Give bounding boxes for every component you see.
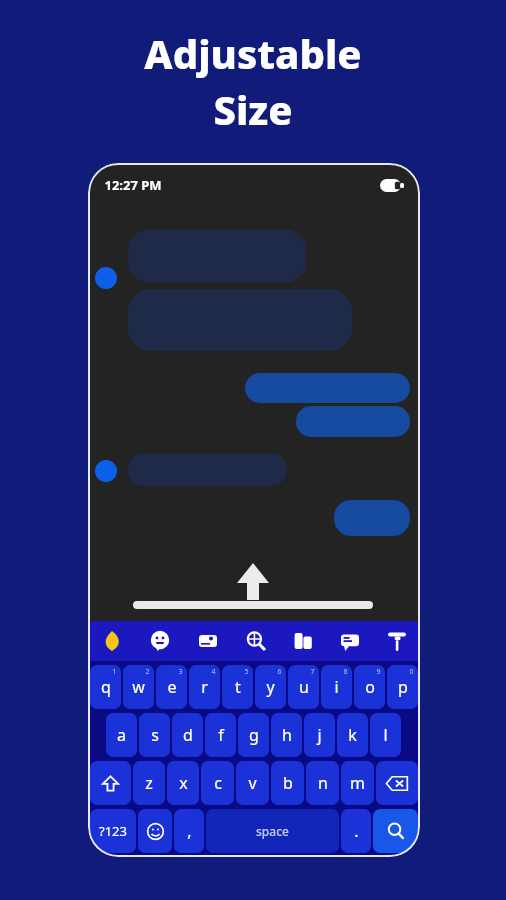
staticText: a xyxy=(117,724,126,746)
button[interactable] xyxy=(128,289,352,351)
staticText: x xyxy=(179,772,188,794)
staticText: w xyxy=(132,676,145,698)
button[interactable]: z xyxy=(133,761,165,805)
button[interactable]: f xyxy=(205,713,236,757)
staticText: e xyxy=(167,676,177,698)
button[interactable] xyxy=(128,453,287,486)
staticText: 5 xyxy=(244,667,249,677)
button[interactable]: GIF xyxy=(184,621,232,661)
staticText: 8 xyxy=(343,667,348,677)
button[interactable]: Search xyxy=(232,621,279,661)
staticText: q xyxy=(101,676,111,698)
staticText: c xyxy=(214,772,222,794)
staticText: f xyxy=(218,724,224,746)
button[interactable]: v xyxy=(236,761,269,805)
button[interactable]: m xyxy=(341,761,374,805)
staticText: , xyxy=(187,820,192,842)
staticText: 7 xyxy=(310,667,315,677)
staticText: 3 xyxy=(178,667,183,677)
staticText: y xyxy=(266,676,275,698)
staticText: 12:27 PM xyxy=(104,176,162,194)
button[interactable]: ?123 xyxy=(90,809,136,853)
button[interactable]: Emoji xyxy=(138,809,172,853)
button[interactable]: Search xyxy=(373,809,418,853)
button[interactable]: Customize xyxy=(373,621,420,661)
button[interactable]: Stickers xyxy=(136,621,184,661)
staticText: . xyxy=(354,820,359,842)
button[interactable]: Backspace xyxy=(376,761,418,805)
staticText: h xyxy=(282,724,292,746)
button[interactable]: o xyxy=(354,665,385,709)
staticText: r xyxy=(201,676,208,698)
button[interactable]: t xyxy=(222,665,253,709)
button[interactable]: p xyxy=(387,665,418,709)
staticText: n xyxy=(318,772,328,794)
button[interactable]: Resize keyboard xyxy=(133,559,373,611)
staticText: u xyxy=(299,676,309,698)
button[interactable]: x xyxy=(167,761,199,805)
staticText: o xyxy=(365,676,375,698)
button[interactable]: j xyxy=(304,713,335,757)
button[interactable] xyxy=(128,229,306,283)
button[interactable]: b xyxy=(271,761,304,805)
staticText: g xyxy=(249,724,259,746)
button[interactable]: a xyxy=(106,713,137,757)
staticText: b xyxy=(283,772,293,794)
button[interactable]: , xyxy=(174,809,204,853)
button[interactable]: q xyxy=(90,665,121,709)
button[interactable]: Contact avatar xyxy=(95,267,117,289)
staticText: m xyxy=(350,772,365,794)
button[interactable] xyxy=(296,406,410,437)
staticText: 4 xyxy=(211,667,216,677)
staticText: 6 xyxy=(277,667,282,677)
staticText: d xyxy=(183,724,193,746)
button[interactable]: e xyxy=(156,665,187,709)
button[interactable] xyxy=(245,373,410,403)
button[interactable]: space xyxy=(206,809,339,853)
button[interactable]: . xyxy=(341,809,371,853)
button[interactable]: Contact avatar xyxy=(95,460,117,482)
staticText: 2 xyxy=(145,667,150,677)
button[interactable]: y xyxy=(255,665,286,709)
staticText: Adjustable xyxy=(144,26,362,80)
staticText: k xyxy=(348,724,357,746)
button[interactable]: w xyxy=(123,665,154,709)
button[interactable]: c xyxy=(201,761,234,805)
button[interactable]: Themes xyxy=(88,621,136,661)
button[interactable]: l xyxy=(370,713,401,757)
staticText: l xyxy=(383,724,388,746)
button[interactable]: u xyxy=(288,665,319,709)
button[interactable]: i xyxy=(321,665,352,709)
staticText: v xyxy=(248,772,257,794)
staticText: 0 xyxy=(409,667,414,677)
button[interactable]: Translate xyxy=(326,621,373,661)
button[interactable]: Shift xyxy=(90,761,131,805)
staticText: Size xyxy=(213,82,293,136)
staticText: j xyxy=(317,724,322,746)
button[interactable]: h xyxy=(271,713,302,757)
staticText: t xyxy=(235,676,241,698)
button[interactable]: s xyxy=(139,713,170,757)
staticText: space xyxy=(256,823,289,839)
staticText: 1 xyxy=(112,667,117,677)
staticText: p xyxy=(398,676,408,698)
staticText: ?123 xyxy=(99,822,127,840)
button[interactable]: d xyxy=(172,713,203,757)
staticText: i xyxy=(334,676,339,698)
staticText: z xyxy=(145,772,153,794)
button[interactable]: n xyxy=(306,761,339,805)
button[interactable]: k xyxy=(337,713,368,757)
button[interactable]: Clipboard xyxy=(279,621,326,661)
staticText: 9 xyxy=(376,667,381,677)
button[interactable]: g xyxy=(238,713,269,757)
button[interactable] xyxy=(334,500,410,536)
button[interactable]: r xyxy=(189,665,220,709)
staticText: s xyxy=(151,724,159,746)
